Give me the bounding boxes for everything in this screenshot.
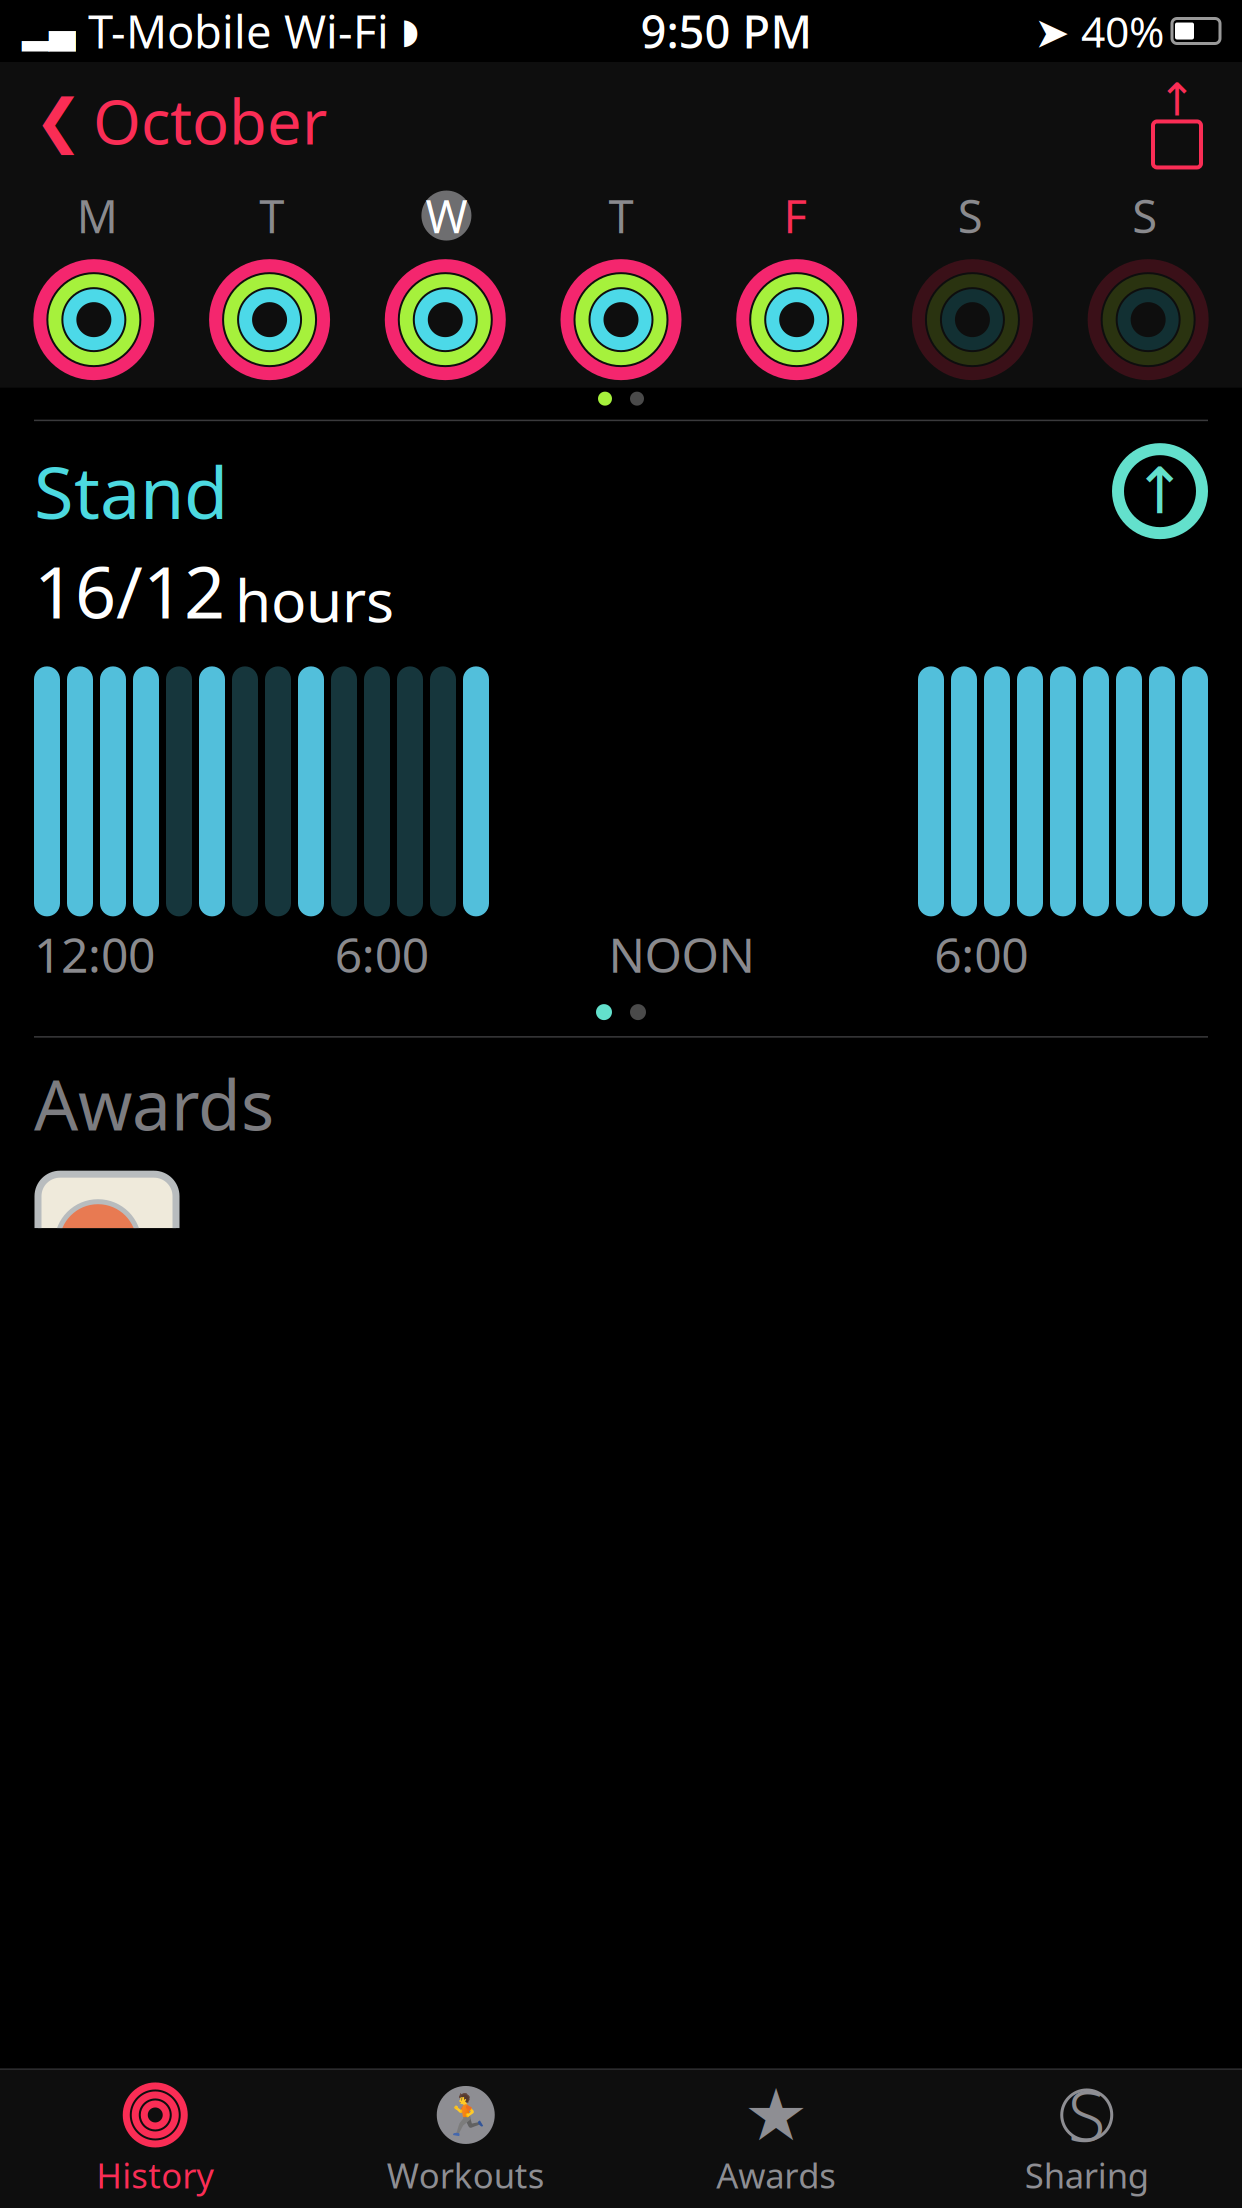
- staticText: S: [958, 185, 983, 246]
- staticText: Stand: [34, 443, 228, 539]
- staticText: M: [77, 185, 118, 246]
- staticText: ▂▄: [22, 11, 76, 51]
- staticText: 🏃: [441, 2092, 491, 2138]
- staticText: Awards: [34, 1058, 274, 1150]
- staticText: 6:00: [934, 922, 1028, 986]
- staticText: ↑: [1133, 455, 1187, 527]
- staticText: Workouts: [387, 2152, 545, 2198]
- button[interactable]: S: [931, 2070, 1242, 2208]
- staticText: 9:50 PM: [640, 1, 812, 61]
- staticText: 12:00: [34, 922, 155, 986]
- staticText: History: [96, 2152, 214, 2198]
- staticText: NOON: [608, 922, 754, 986]
- staticText: T-Mobile Wi-Fi: [76, 1, 401, 61]
- staticText: W: [425, 185, 467, 246]
- staticText: ❮: [34, 87, 83, 154]
- staticText: ➤ 40%: [1034, 3, 1164, 59]
- button[interactable]: Perfect week award: [34, 1150, 180, 1362]
- staticText: Sharing: [1025, 2152, 1149, 2198]
- staticText: 16/12: [34, 543, 225, 638]
- button[interactable]: ★: [621, 2070, 931, 2208]
- staticText: T: [259, 185, 284, 246]
- staticText: ◗: [401, 11, 419, 51]
- staticText: ↑: [1158, 74, 1196, 125]
- button[interactable]: Share: [1146, 84, 1208, 158]
- staticText: Awards: [716, 2152, 836, 2198]
- button[interactable]: 🏃: [310, 2070, 621, 2208]
- staticText: S: [1132, 185, 1157, 246]
- button[interactable]: ❮: [34, 74, 327, 167]
- staticText: F: [784, 185, 808, 246]
- staticText: S: [1068, 2069, 1106, 2161]
- staticText: October: [93, 80, 327, 161]
- button[interactable]: Stand goal reached: [1112, 443, 1208, 539]
- staticText: T: [608, 185, 633, 246]
- button[interactable]: History: [0, 2070, 310, 2208]
- staticText: 6:00: [335, 922, 429, 986]
- staticText: hours: [235, 560, 394, 638]
- staticText: ★: [744, 2074, 809, 2156]
